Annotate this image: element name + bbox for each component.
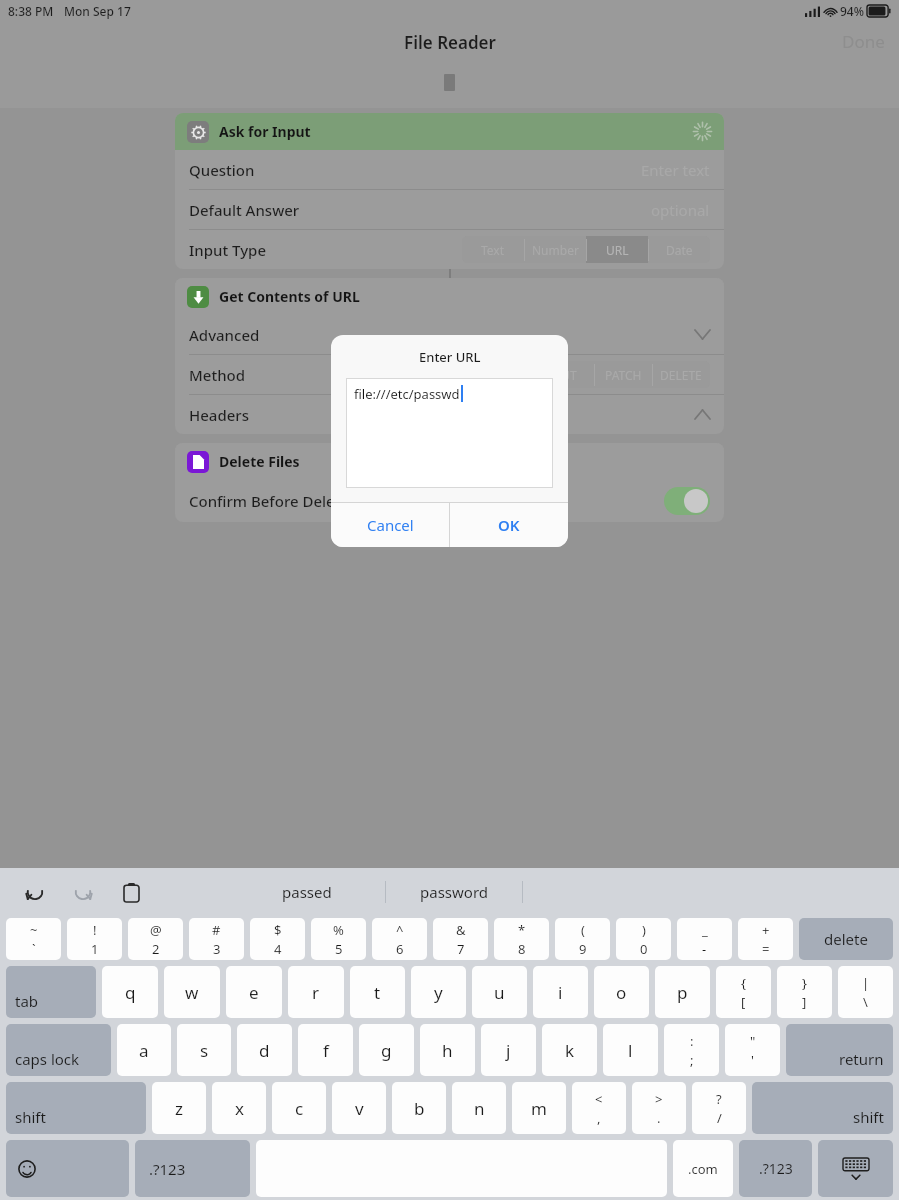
button[interactable]: $ xyxy=(250,918,305,960)
button[interactable]: Redo xyxy=(66,875,100,909)
staticText: . xyxy=(657,1109,661,1127)
staticText: s xyxy=(200,1039,209,1062)
button[interactable]: z xyxy=(152,1082,206,1134)
button[interactable]: ^ xyxy=(372,918,427,960)
button[interactable]: PATCH xyxy=(594,361,652,388)
button[interactable]: PUT xyxy=(536,361,594,388)
button[interactable]: ) xyxy=(616,918,671,960)
button[interactable]: q xyxy=(102,966,158,1018)
staticText: u xyxy=(494,981,505,1004)
staticText: PATCH xyxy=(605,367,642,383)
button[interactable]: _ xyxy=(677,918,732,960)
staticText: + xyxy=(762,921,770,939)
button[interactable]: m xyxy=(512,1082,566,1134)
button[interactable]: b xyxy=(392,1082,446,1134)
button[interactable]: Hide keyboard xyxy=(818,1140,893,1197)
button[interactable]: u xyxy=(472,966,527,1018)
button[interactable]: c xyxy=(272,1082,326,1134)
button[interactable]: s xyxy=(177,1024,231,1076)
staticText: optional xyxy=(651,200,710,220)
button[interactable]: k xyxy=(542,1024,597,1076)
staticText: 9 xyxy=(579,940,587,958)
button[interactable]: Delete Files xyxy=(175,443,724,480)
button[interactable]: % xyxy=(311,918,366,960)
button[interactable]: l xyxy=(603,1024,658,1076)
button[interactable]: d xyxy=(237,1024,292,1076)
staticText: Get Contents of URL xyxy=(219,287,360,306)
button[interactable]: j xyxy=(481,1024,536,1076)
button[interactable]: * xyxy=(494,918,549,960)
button[interactable]: e xyxy=(226,966,282,1018)
button[interactable]: .?123 xyxy=(135,1140,250,1197)
staticText: : xyxy=(690,1032,694,1050)
button[interactable]: n xyxy=(452,1082,506,1134)
button[interactable]: Number xyxy=(524,236,586,263)
button[interactable]: " xyxy=(725,1024,780,1076)
button[interactable]: Get Contents of URL xyxy=(175,278,724,315)
button[interactable]: < xyxy=(572,1082,626,1134)
button[interactable]: y xyxy=(411,966,466,1018)
button[interactable]: x xyxy=(212,1082,266,1134)
button[interactable]: Emoji xyxy=(6,1140,129,1197)
button[interactable]: Cancel xyxy=(331,503,449,547)
button[interactable]: POST xyxy=(478,361,536,388)
button[interactable]: delete xyxy=(799,918,893,960)
button[interactable]: g xyxy=(359,1024,414,1076)
button[interactable]: # xyxy=(189,918,244,960)
button[interactable]: > xyxy=(632,1082,686,1134)
button[interactable]: } xyxy=(777,966,832,1018)
staticText: 5 xyxy=(335,940,343,958)
button[interactable]: URL xyxy=(586,236,648,263)
button[interactable]: Question xyxy=(175,150,724,189)
button[interactable]: ? xyxy=(692,1082,746,1134)
button[interactable]: o xyxy=(594,966,649,1018)
button[interactable]: v xyxy=(332,1082,386,1134)
button[interactable]: { xyxy=(716,966,771,1018)
button[interactable]: | xyxy=(838,966,893,1018)
button[interactable]: h xyxy=(420,1024,475,1076)
button[interactable]: shift xyxy=(6,1082,146,1134)
button[interactable]: f xyxy=(298,1024,353,1076)
button[interactable]: ( xyxy=(555,918,610,960)
button[interactable]: r xyxy=(288,966,344,1018)
staticText: @ xyxy=(150,921,162,939)
button[interactable]: .?123 xyxy=(739,1140,812,1197)
button[interactable]: Default Answer xyxy=(175,190,724,229)
button[interactable]: Undo xyxy=(18,875,52,909)
button[interactable]: tab xyxy=(6,966,96,1018)
button[interactable]: Ask for Input xyxy=(175,113,724,150)
staticText: * xyxy=(518,921,526,939)
button[interactable]: .com xyxy=(673,1140,733,1197)
button[interactable]: password xyxy=(386,868,522,915)
button[interactable]: Headers xyxy=(175,395,724,434)
staticText: d xyxy=(259,1039,270,1062)
button[interactable]: GET xyxy=(420,361,478,388)
button[interactable]: ! xyxy=(67,918,122,960)
button[interactable]: & xyxy=(433,918,488,960)
button[interactable]: Advanced xyxy=(175,315,724,354)
button[interactable]: Date xyxy=(648,236,710,263)
button[interactable]: Paste xyxy=(114,875,148,909)
button[interactable]: t xyxy=(350,966,405,1018)
button[interactable]: w xyxy=(164,966,220,1018)
button[interactable] xyxy=(664,487,710,515)
staticText: .?123 xyxy=(149,1159,186,1179)
button[interactable]: @ xyxy=(128,918,183,960)
button[interactable]: DELETE xyxy=(652,361,710,388)
button[interactable]: + xyxy=(738,918,793,960)
button[interactable]: ~ xyxy=(6,918,61,960)
button[interactable]: OK xyxy=(450,503,568,547)
button[interactable]: i xyxy=(533,966,588,1018)
staticText: v xyxy=(355,1097,364,1120)
button[interactable]: return xyxy=(786,1024,893,1076)
button[interactable]: a xyxy=(117,1024,171,1076)
button[interactable]: shift xyxy=(752,1082,893,1134)
button[interactable]: : xyxy=(664,1024,719,1076)
button[interactable]: passed xyxy=(228,868,385,915)
button[interactable]: p xyxy=(655,966,710,1018)
staticText: j xyxy=(506,1039,511,1062)
button[interactable]: caps lock xyxy=(6,1024,111,1076)
